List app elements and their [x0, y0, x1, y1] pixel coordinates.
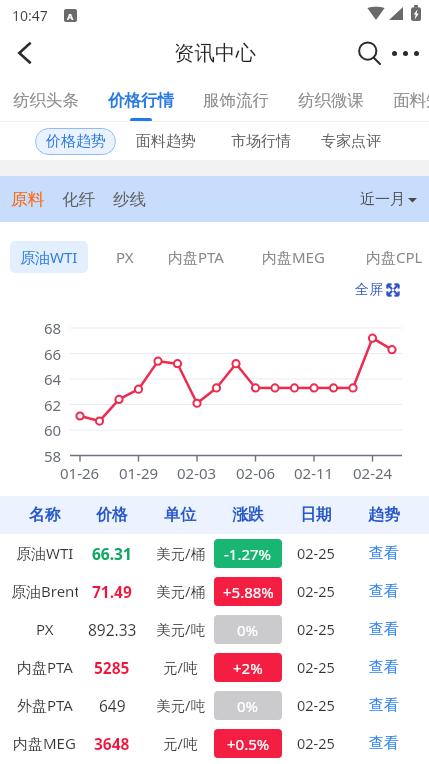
staticText: 美元/吨 [156, 619, 205, 639]
staticText: +2% [233, 658, 263, 678]
staticText: 专家点评 [321, 132, 381, 151]
staticText: 内盘PTA [168, 247, 224, 267]
staticText: 美元/桶 [156, 543, 205, 563]
button[interactable]: PX [0, 610, 429, 648]
staticText: 价格趋势 [46, 132, 106, 151]
staticText: 美元/桶 [156, 581, 205, 601]
button[interactable]: 查看 [363, 616, 405, 643]
button[interactable]: 查看 [363, 578, 405, 605]
staticText: 查看 [369, 620, 399, 639]
button[interactable]: PX [85, 241, 165, 273]
staticText: 名称 [29, 505, 61, 525]
staticText: 纺织头条 [13, 90, 79, 111]
button[interactable]: 查看 [363, 730, 405, 757]
staticText: 元/吨 [163, 733, 198, 753]
button[interactable]: 专家点评 [311, 128, 391, 155]
button[interactable]: 外盘PTA [0, 686, 429, 724]
button[interactable]: 内盘MEG [0, 724, 429, 762]
staticText: 01-29 [119, 463, 159, 483]
staticText: 68 [44, 318, 62, 338]
staticText: 化纤 [62, 189, 95, 210]
staticText: +0.5% [227, 734, 270, 754]
staticText: -1.27% [224, 544, 272, 564]
button[interactable]: 原料 [2, 180, 53, 219]
staticText: 涨跌 [232, 505, 264, 525]
button[interactable]: 纺织头条 [13, 76, 80, 122]
button[interactable]: Back [0, 30, 48, 76]
staticText: 60 [44, 420, 62, 440]
staticText: 892.33 [88, 619, 137, 640]
staticText: 66.31 [92, 543, 132, 564]
button[interactable]: 查看 [363, 692, 405, 719]
staticText: 内盘PTA [17, 657, 73, 677]
button[interactable]: More options [386, 30, 424, 76]
button[interactable]: 全屏 [355, 281, 429, 299]
staticText: 3648 [94, 733, 130, 754]
staticText: 02-24 [353, 463, 393, 483]
staticText: 02-03 [177, 463, 217, 483]
staticText: 美元/吨 [156, 695, 205, 715]
staticText: 02-25 [297, 657, 335, 677]
button[interactable]: 价格趋势 [35, 128, 116, 155]
button[interactable]: 纱线 [104, 180, 155, 219]
button[interactable]: 内盘PTA [0, 648, 429, 686]
staticText: 66 [44, 344, 62, 364]
staticText: 趋势 [368, 505, 400, 525]
button[interactable]: 纺织微课 [298, 76, 365, 122]
button[interactable]: 市场行情 [221, 128, 301, 155]
staticText: A [67, 10, 74, 22]
staticText: 02-25 [297, 695, 335, 715]
staticText: PX [36, 619, 54, 639]
button[interactable]: 面料趋势 [126, 128, 206, 155]
button[interactable]: 内盘PTA [156, 241, 236, 273]
staticText: 02-25 [297, 581, 335, 601]
staticText: 查看 [369, 658, 399, 677]
staticText: 原油Brent [11, 581, 78, 601]
button[interactable]: 近一月 [348, 182, 429, 217]
button[interactable]: 服饰流行 [203, 76, 270, 122]
staticText: 单位 [164, 505, 196, 525]
button[interactable]: 原油Brent [0, 572, 429, 610]
button[interactable]: 查看 [363, 540, 405, 567]
staticText: +5.88% [223, 582, 274, 602]
staticText: 原料 [11, 189, 44, 210]
staticText: 内盘MEG [13, 733, 76, 753]
staticText: 0% [237, 696, 259, 716]
button[interactable]: 面料知识 [393, 76, 429, 122]
staticText: 资讯中心 [174, 40, 256, 66]
staticText: 元/吨 [163, 657, 198, 677]
staticText: 0% [237, 620, 259, 640]
staticText: 查看 [369, 582, 399, 601]
button[interactable]: 内盘MEG [253, 241, 333, 273]
button[interactable]: 内盘CPL [354, 241, 429, 273]
button[interactable]: 化纤 [53, 180, 104, 219]
staticText: 查看 [369, 544, 399, 563]
staticText: 面料趋势 [136, 132, 196, 151]
button[interactable]: 查看 [363, 654, 405, 681]
staticText: 01-26 [60, 463, 100, 483]
staticText: 内盘CPL [366, 247, 423, 267]
staticText: 日期 [300, 505, 332, 525]
staticText: 纺织微课 [298, 90, 364, 111]
staticText: 02-11 [294, 463, 334, 483]
staticText: 市场行情 [231, 132, 291, 151]
staticText: 64 [44, 369, 62, 389]
button[interactable]: Search [350, 30, 390, 76]
staticText: 649 [99, 695, 126, 716]
staticText: 纱线 [113, 189, 146, 210]
staticText: 面料知识 [393, 90, 429, 111]
staticText: 全屏 [355, 281, 383, 299]
button[interactable]: 原油WTI [10, 241, 88, 273]
staticText: 02-06 [236, 463, 276, 483]
staticText: 62 [44, 395, 62, 415]
staticText: 服饰流行 [203, 90, 269, 111]
staticText: 02-25 [297, 733, 335, 753]
staticText: 02-25 [297, 619, 335, 639]
staticText: 5285 [94, 657, 130, 678]
button[interactable]: 原油WTI [0, 534, 429, 572]
staticText: 58 [44, 446, 62, 466]
staticText: 02-25 [297, 543, 335, 563]
staticText: 原油WTI [16, 543, 74, 563]
staticText: 查看 [369, 734, 399, 753]
button[interactable]: 价格行情 [108, 76, 175, 122]
